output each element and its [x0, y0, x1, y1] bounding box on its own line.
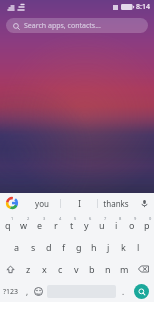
- button[interactable]: Search apps, contacts...: [6, 18, 148, 33]
- staticText: n: [105, 263, 111, 275]
- button[interactable]: a: [9, 237, 25, 257]
- button[interactable]: g: [71, 237, 86, 257]
- button[interactable]: ?123: [0, 281, 22, 302]
- button[interactable]: l: [131, 237, 146, 257]
- staticText: l: [137, 241, 140, 253]
- button[interactable]: t: [64, 215, 79, 235]
- button[interactable]: Search: [134, 284, 149, 299]
- button[interactable]: you: [24, 193, 60, 213]
- staticText: i: [115, 219, 118, 231]
- button[interactable]: Voice input: [134, 193, 154, 213]
- staticText: u: [99, 219, 105, 231]
- staticText: p: [144, 219, 150, 231]
- button[interactable]: o: [124, 215, 139, 235]
- staticText: 7: [104, 216, 107, 221]
- staticText: 5: [74, 216, 77, 221]
- button[interactable]: Shift: [0, 259, 21, 279]
- staticText: 4: [59, 216, 62, 221]
- staticText: y: [84, 219, 89, 231]
- button[interactable]: I: [61, 193, 97, 213]
- staticText: c: [58, 263, 63, 275]
- staticText: ?123: [3, 287, 19, 297]
- staticText: o: [129, 219, 135, 231]
- staticText: j: [107, 241, 110, 253]
- staticText: x: [42, 263, 47, 275]
- button[interactable]: q: [0, 215, 16, 235]
- staticText: 0: [149, 216, 152, 221]
- button[interactable]: x: [36, 259, 52, 279]
- button[interactable]: b: [84, 259, 100, 279]
- button[interactable]: n: [100, 259, 116, 279]
- staticText: f: [62, 241, 66, 253]
- button[interactable]: d: [41, 237, 56, 257]
- staticText: v: [74, 263, 79, 275]
- button[interactable]: Backspace: [132, 259, 154, 279]
- staticText: t: [70, 219, 74, 231]
- staticText: a: [14, 241, 20, 253]
- button[interactable]: r: [48, 215, 64, 235]
- button[interactable]: i: [109, 215, 124, 235]
- staticText: g: [76, 241, 82, 253]
- button[interactable]: e: [32, 215, 48, 235]
- staticText: m: [120, 263, 129, 275]
- staticText: Search apps, contacts...: [24, 21, 101, 31]
- staticText: 3: [43, 216, 46, 221]
- button[interactable]: v: [68, 259, 84, 279]
- button[interactable]: thanks: [98, 193, 134, 213]
- button[interactable]: Google: [0, 193, 24, 213]
- button[interactable]: .: [118, 281, 129, 302]
- staticText: q: [5, 219, 11, 231]
- staticText: .: [122, 286, 125, 297]
- staticText: s: [31, 241, 36, 253]
- button[interactable]: c: [52, 259, 68, 279]
- staticText: 9: [134, 216, 137, 221]
- button[interactable]: j: [101, 237, 116, 257]
- button[interactable]: u: [94, 215, 109, 235]
- button[interactable]: p: [139, 215, 154, 235]
- staticText: thanks: [103, 198, 129, 209]
- button[interactable]: Emoji: [32, 281, 45, 302]
- staticText: 6: [89, 216, 92, 221]
- staticText: r: [54, 219, 58, 231]
- button[interactable]: ,: [22, 281, 32, 302]
- button[interactable]: s: [25, 237, 41, 257]
- button[interactable]: y: [79, 215, 94, 235]
- staticText: e: [37, 219, 43, 231]
- staticText: 2: [27, 216, 30, 221]
- staticText: d: [46, 241, 52, 253]
- button[interactable]: h: [86, 237, 101, 257]
- staticText: b: [89, 263, 95, 275]
- staticText: you: [35, 198, 49, 209]
- button[interactable]: w: [16, 215, 32, 235]
- staticText: 1: [11, 216, 14, 221]
- staticText: k: [121, 241, 126, 253]
- staticText: 8:14: [136, 2, 150, 12]
- button[interactable]: m: [116, 259, 132, 279]
- staticText: ,: [26, 286, 29, 297]
- button[interactable]: z: [21, 259, 36, 279]
- staticText: z: [26, 263, 31, 275]
- staticText: w: [20, 219, 28, 231]
- staticText: 8: [119, 216, 122, 221]
- staticText: I: [78, 198, 81, 209]
- button[interactable]: k: [116, 237, 131, 257]
- button[interactable]: f: [56, 237, 71, 257]
- staticText: h: [91, 241, 97, 253]
